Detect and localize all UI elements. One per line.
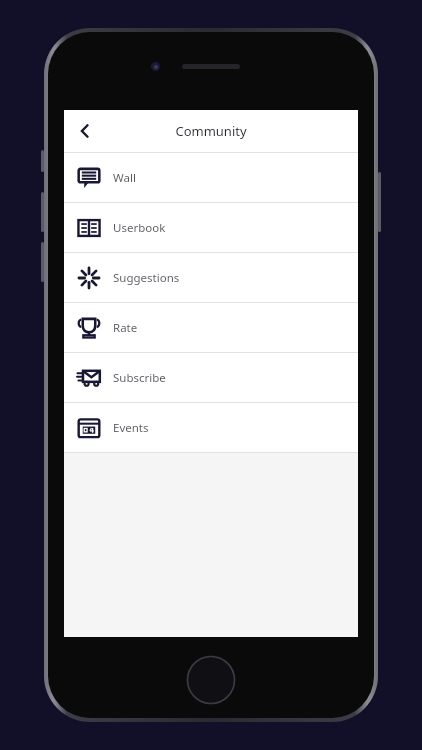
- staticText: Events: [113, 420, 149, 436]
- staticText: Wall: [113, 170, 136, 186]
- button[interactable]: Suggestions: [64, 253, 358, 302]
- staticText: Rate: [113, 320, 138, 336]
- button[interactable]: Back: [64, 110, 106, 152]
- staticText: Community: [175, 122, 247, 140]
- button[interactable]: Events: [64, 403, 358, 452]
- staticText: Userbook: [113, 220, 166, 236]
- button[interactable]: Wall: [64, 153, 358, 202]
- staticText: Suggestions: [113, 270, 180, 286]
- button[interactable]: Rate: [64, 303, 358, 352]
- staticText: Subscribe: [113, 370, 166, 386]
- button[interactable]: Subscribe: [64, 353, 358, 402]
- button[interactable]: Userbook: [64, 203, 358, 252]
